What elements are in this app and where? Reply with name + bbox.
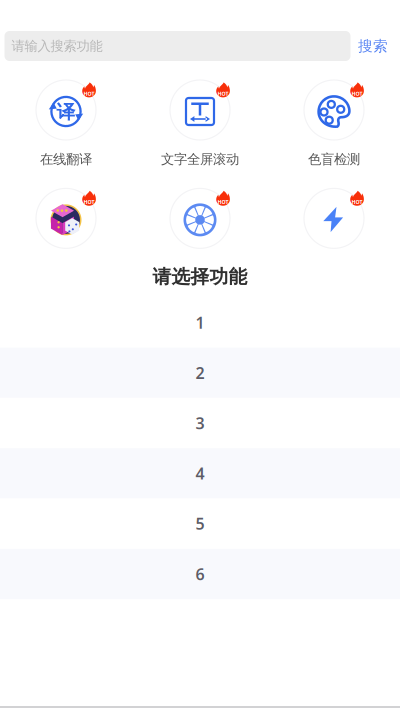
staticText: 搜索 [358,37,388,55]
button[interactable]: HOT [274,188,394,248]
staticText: 1 [195,312,204,333]
staticText: 5 [195,513,204,534]
button[interactable]: 1 [0,297,400,348]
staticText: HOT [217,198,228,205]
staticText: 译 [56,100,75,123]
staticText: 色盲检测 [308,151,360,167]
button[interactable]: 3 [0,398,400,448]
button[interactable]: HOT [140,80,260,167]
button[interactable]: HOT [140,188,260,248]
staticText: HOT [351,198,362,205]
staticText: HOT [83,90,94,97]
button[interactable]: 5 [0,498,400,549]
staticText: 请选择功能 [152,265,247,288]
button[interactable]: HOT [274,80,394,167]
staticText: 6 [195,563,204,584]
button[interactable]: 2 [0,348,400,398]
button[interactable]: 译 [6,80,126,167]
staticText: 文字全屏滚动 [161,151,239,167]
button[interactable]: 4 [0,448,400,498]
button[interactable]: 6 [0,549,400,599]
staticText: HOT [351,90,362,97]
staticText: 4 [195,463,204,484]
staticText: 请输入搜索功能 [11,38,102,54]
staticText: HOT [83,198,94,205]
button[interactable]: HOT [6,188,126,248]
staticText: 3 [195,412,204,434]
staticText: 2 [195,362,204,383]
staticText: HOT [217,90,228,97]
staticText: 在线翻译 [40,151,92,167]
button[interactable]: 搜索 [350,31,395,61]
